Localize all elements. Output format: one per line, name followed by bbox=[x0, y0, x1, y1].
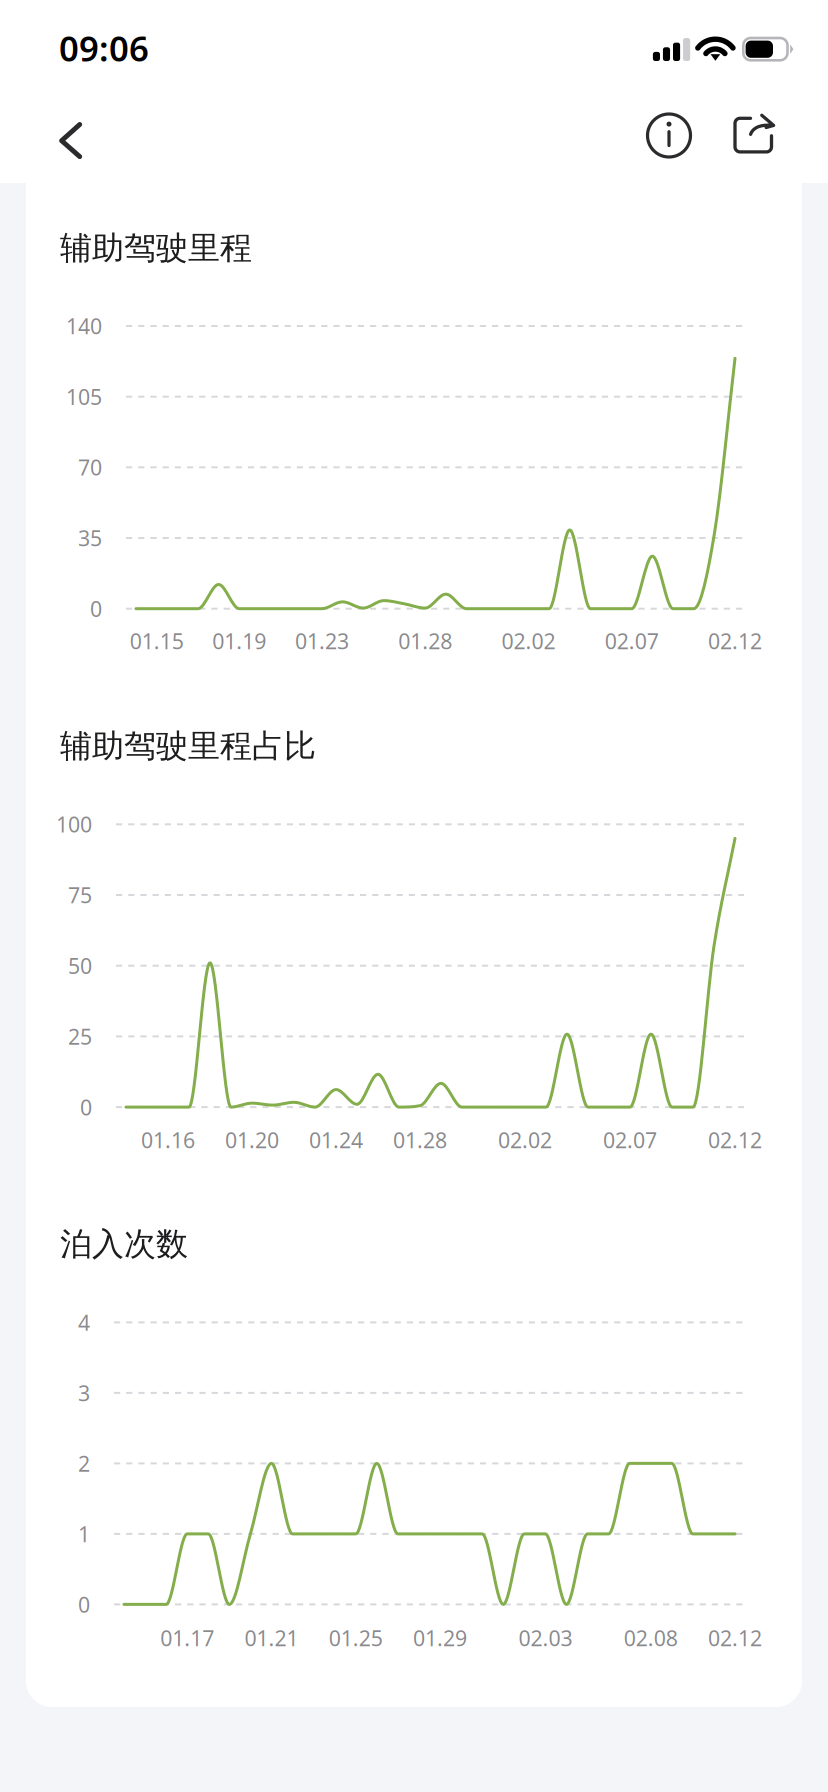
staticText: 02.07 bbox=[603, 1126, 657, 1154]
staticText: 02.08 bbox=[624, 1624, 678, 1652]
staticText: 辅助驾驶里程 bbox=[60, 228, 252, 268]
staticText: 01.19 bbox=[212, 627, 266, 655]
staticText: 2 bbox=[78, 1449, 90, 1477]
staticText: 70 bbox=[78, 453, 102, 481]
staticText: 09:06 bbox=[59, 25, 149, 71]
staticText: 1 bbox=[78, 1520, 90, 1548]
staticText: 02.03 bbox=[518, 1624, 572, 1652]
staticText: 75 bbox=[68, 881, 92, 909]
staticText: 02.07 bbox=[605, 627, 659, 655]
staticText: 25 bbox=[68, 1022, 92, 1050]
staticText: 100 bbox=[56, 810, 92, 838]
staticText: 01.20 bbox=[225, 1126, 279, 1154]
button[interactable]: Share bbox=[713, 95, 793, 175]
staticText: 辅助驾驶里程占比 bbox=[60, 726, 316, 766]
staticText: 01.15 bbox=[130, 627, 184, 655]
staticText: 01.21 bbox=[244, 1624, 298, 1652]
staticText: 01.23 bbox=[295, 627, 349, 655]
staticText: 02.12 bbox=[708, 1126, 762, 1154]
staticText: 02.02 bbox=[501, 627, 555, 655]
button[interactable]: Info bbox=[631, 97, 707, 173]
staticText: 4 bbox=[78, 1308, 90, 1336]
staticText: 02.12 bbox=[708, 1624, 762, 1652]
staticText: 35 bbox=[78, 524, 102, 552]
staticText: 01.24 bbox=[309, 1126, 363, 1154]
staticText: 140 bbox=[66, 312, 102, 340]
staticText: 105 bbox=[66, 382, 102, 411]
staticText: 02.12 bbox=[708, 627, 762, 655]
staticText: 02.02 bbox=[498, 1126, 552, 1154]
staticText: 01.28 bbox=[398, 627, 452, 655]
staticText: 0 bbox=[78, 1590, 90, 1618]
staticText: 01.29 bbox=[413, 1624, 467, 1652]
button[interactable]: Back bbox=[34, 102, 110, 178]
staticText: 01.28 bbox=[393, 1126, 447, 1154]
staticText: 01.16 bbox=[141, 1126, 195, 1154]
staticText: 0 bbox=[80, 1093, 92, 1121]
staticText: 0 bbox=[90, 594, 102, 623]
staticText: 泊入次数 bbox=[60, 1224, 188, 1264]
staticText: 01.17 bbox=[160, 1624, 214, 1652]
staticText: 50 bbox=[68, 951, 92, 980]
staticText: 3 bbox=[78, 1379, 90, 1407]
staticText: 01.25 bbox=[329, 1624, 383, 1652]
